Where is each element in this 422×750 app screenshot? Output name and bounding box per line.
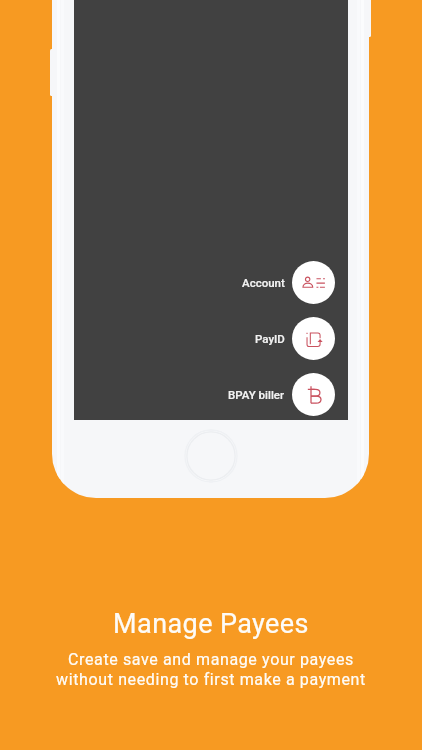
button[interactable]: PayID: [255, 317, 335, 360]
button[interactable]: BPAY biller: [228, 373, 335, 416]
other: Add BPAY biller: [292, 373, 335, 416]
button[interactable]: Account: [242, 261, 335, 304]
other: Add account payee: [292, 261, 335, 304]
staticText: Create save and manage your payees witho…: [56, 650, 366, 689]
staticText: Manage Payees: [113, 608, 309, 640]
staticText: Account: [242, 276, 285, 289]
other: Add PayID payee: [292, 317, 335, 360]
staticText: BPAY biller: [228, 388, 285, 401]
staticText: PayID: [255, 332, 285, 345]
